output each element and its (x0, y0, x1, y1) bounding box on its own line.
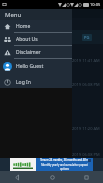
staticText: 2019 06:08 PM (72, 82, 100, 87)
staticText: Tenure 24 months, 36 months and 48 m (40, 158, 89, 162)
staticText: 2019 11:41 AM (72, 58, 100, 63)
staticText: Log In (16, 79, 31, 86)
staticText: PG (84, 35, 90, 40)
staticText: 10:05 (90, 2, 101, 7)
staticText: 2019 06:08 PM (72, 152, 100, 157)
button[interactable]: Tenure 24 months, 36 months and 48 m (10, 158, 93, 171)
staticText: Menu (5, 11, 22, 19)
staticText: Disclaimer (16, 49, 41, 56)
staticText: 2019 06:11 PM (72, 174, 100, 179)
button[interactable]: Home (35, 171, 69, 183)
staticText: Hello Guest (16, 63, 44, 70)
staticText: Monthly yearly and cumulative payout opt… (37, 163, 92, 171)
button[interactable]: Back (0, 171, 35, 183)
staticText: 2019 11:20 AM (72, 126, 100, 131)
staticText: About Us (16, 36, 38, 43)
button[interactable]: Recent apps (69, 171, 103, 183)
button[interactable]: Home (0, 20, 72, 33)
staticText: Home (16, 23, 31, 30)
button[interactable]: About Us (0, 33, 72, 46)
button[interactable]: Hello Guest (0, 59, 72, 73)
button[interactable]: Log In (0, 76, 72, 88)
button[interactable]: Disclaimer (0, 46, 72, 59)
